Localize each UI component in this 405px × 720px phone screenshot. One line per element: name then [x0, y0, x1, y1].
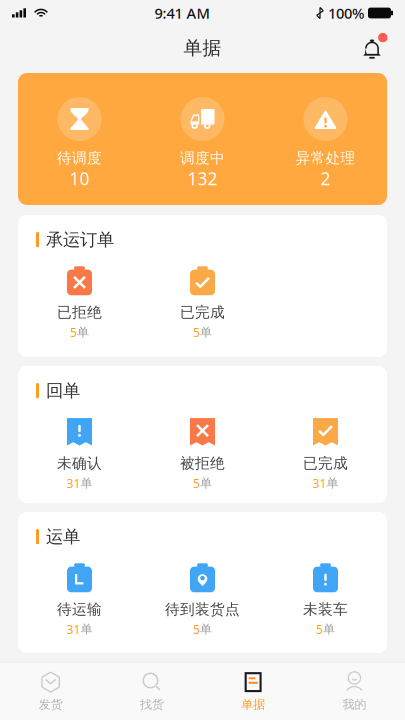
staticText: 待到装货点 — [165, 600, 240, 618]
button[interactable]: 发货 — [0, 665, 101, 717]
staticText: 5 — [70, 324, 77, 340]
staticText: 2 — [320, 167, 330, 190]
button[interactable]: 异常处理 — [264, 73, 387, 205]
staticText: 单据 — [183, 36, 221, 59]
button[interactable]: 未确认 — [18, 417, 141, 491]
staticText: 运单 — [46, 526, 80, 547]
staticText: 5 — [193, 621, 200, 637]
staticText: 单 — [80, 476, 92, 491]
staticText: 31 — [66, 475, 80, 491]
staticText: 未装车 — [303, 600, 348, 618]
button[interactable]: 已拒绝 — [18, 266, 141, 340]
staticText: 待运输 — [57, 600, 102, 618]
staticText: 待调度 — [57, 149, 102, 167]
staticText: 单 — [200, 476, 212, 491]
staticText: 100% — [328, 3, 364, 23]
staticText: 已完成 — [180, 303, 225, 321]
button[interactable]: 被拒绝 — [141, 417, 264, 491]
button[interactable]: 待运输 — [18, 563, 141, 637]
staticText: 回单 — [46, 380, 80, 401]
staticText: 单 — [80, 622, 92, 637]
button[interactable]: 单据 — [202, 665, 304, 717]
staticText: 10 — [69, 167, 89, 190]
button[interactable]: Notifications — [355, 31, 389, 65]
button[interactable]: 找货 — [101, 665, 202, 717]
button[interactable]: 待到装货点 — [141, 563, 264, 637]
staticText: 承运订单 — [46, 229, 114, 250]
staticText: 5 — [193, 475, 200, 491]
staticText: 找货 — [140, 697, 164, 712]
staticText: 单 — [323, 622, 335, 637]
staticText: 我的 — [342, 697, 366, 712]
staticText: 被拒绝 — [180, 454, 225, 472]
staticText: 已完成 — [303, 454, 348, 472]
staticText: 调度中 — [180, 149, 225, 167]
staticText: 单据 — [241, 697, 265, 712]
staticText: 未确认 — [57, 454, 102, 472]
button[interactable]: 待调度 — [18, 73, 141, 205]
staticText: 单 — [326, 476, 338, 491]
staticText: 5 — [316, 621, 323, 637]
staticText: 单 — [200, 622, 212, 637]
staticText: 31 — [66, 621, 80, 637]
staticText: 异常处理 — [295, 149, 355, 167]
staticText: 31 — [312, 475, 326, 491]
button[interactable]: 调度中 — [141, 73, 264, 205]
staticText: 9:41 AM — [154, 3, 209, 23]
button[interactable]: 我的 — [304, 665, 405, 717]
button[interactable]: 已完成 — [141, 266, 264, 340]
staticText: 单 — [77, 325, 89, 340]
staticText: 单 — [200, 325, 212, 340]
staticText: 发货 — [39, 697, 63, 712]
staticText: 5 — [193, 324, 200, 340]
staticText: 132 — [187, 167, 217, 190]
button[interactable]: 已完成 — [264, 417, 387, 491]
button[interactable]: 未装车 — [264, 563, 387, 637]
staticText: 已拒绝 — [57, 303, 102, 321]
